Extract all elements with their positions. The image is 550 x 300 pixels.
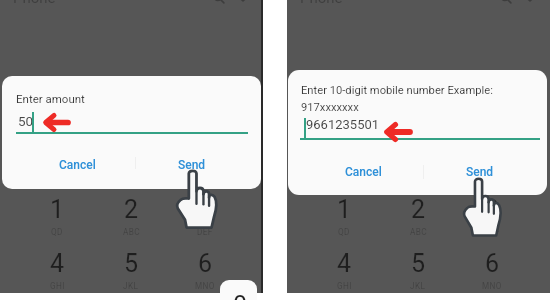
button[interactable]: 3	[168, 195, 242, 241]
staticText: 0	[233, 291, 248, 300]
staticText: 4	[337, 249, 352, 278]
staticText: 3	[485, 195, 500, 224]
staticText: Phone	[300, 0, 343, 7]
staticText: 9661235501	[306, 117, 380, 132]
staticText: 5	[124, 249, 139, 278]
staticText: Enter amount	[16, 92, 85, 105]
staticText: 50	[18, 113, 34, 129]
staticText: GHI	[337, 281, 352, 291]
button[interactable]: 6	[455, 249, 529, 295]
staticText: JKL	[123, 281, 139, 291]
button[interactable]: 2	[381, 195, 455, 241]
button[interactable]: Search	[212, 0, 226, 5]
button[interactable]: 3	[455, 195, 529, 241]
button[interactable]: 6	[168, 249, 242, 295]
staticText: Send	[178, 158, 206, 172]
button[interactable]: Send	[172, 153, 212, 177]
staticText: 1	[50, 195, 65, 224]
button[interactable]: 1	[307, 195, 381, 241]
staticText: QD	[338, 227, 350, 237]
staticText: 4	[50, 249, 65, 278]
staticText: JKL	[410, 281, 426, 291]
staticText: MNO	[482, 281, 502, 291]
staticText: 5	[411, 249, 426, 278]
button[interactable]: Key 0	[220, 280, 257, 300]
staticText: 2	[124, 195, 139, 224]
staticText: 1	[337, 195, 352, 224]
staticText: 6	[198, 249, 213, 278]
staticText: Cancel	[345, 165, 382, 179]
staticText: ABC	[123, 227, 140, 237]
staticText: DEF	[484, 227, 500, 237]
button[interactable]: More options	[236, 0, 250, 6]
staticText: QD	[51, 227, 63, 237]
button[interactable]: More options	[523, 0, 537, 6]
button[interactable]: Search	[499, 0, 513, 5]
button[interactable]: Send	[460, 160, 500, 184]
staticText: MNO	[195, 281, 215, 291]
button[interactable]: Cancel	[53, 153, 102, 177]
staticText: 3	[198, 195, 213, 224]
staticText: Enter 10-digit mobile number Example: 91…	[301, 84, 493, 114]
button[interactable]: 4	[20, 249, 94, 295]
staticText: Phone	[13, 0, 56, 7]
button[interactable]: Cancel	[339, 160, 388, 184]
button[interactable]: 5	[381, 249, 455, 295]
button[interactable]: 4	[307, 249, 381, 295]
staticText: DEF	[197, 227, 213, 237]
staticText: Cancel	[59, 158, 96, 172]
staticText: GHI	[50, 281, 65, 291]
staticText: Send	[466, 165, 494, 179]
staticText: ABC	[410, 227, 427, 237]
button[interactable]: 2	[94, 195, 168, 241]
button[interactable]: 5	[94, 249, 168, 295]
staticText: 6	[485, 249, 500, 278]
button[interactable]: 1	[20, 195, 94, 241]
staticText: 2	[411, 195, 426, 224]
